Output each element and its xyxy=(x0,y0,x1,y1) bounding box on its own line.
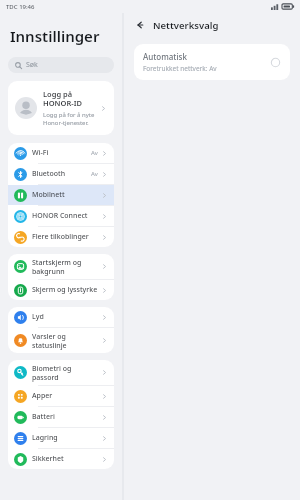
staticText: Apper xyxy=(32,391,101,401)
staticText: Logg på HONOR-ID xyxy=(43,89,82,109)
staticText: Av xyxy=(91,149,98,157)
staticText: HONOR Connect xyxy=(32,211,101,221)
button[interactable]: Lyd xyxy=(8,307,114,327)
button[interactable]: Tilbake xyxy=(132,17,148,33)
button[interactable]: Logg på HONOR-ID xyxy=(8,81,114,135)
staticText: Startskjerm og bakgrunn xyxy=(32,258,101,276)
staticText: Skjerm og lysstyrke xyxy=(32,285,101,295)
staticText: Foretrukket nettverk: Av xyxy=(143,64,217,73)
staticText: Av xyxy=(91,170,98,178)
staticText: Sikkerhet xyxy=(32,454,101,464)
staticText: Varsler og statuslinje xyxy=(32,332,101,350)
staticText: Mobilnett xyxy=(32,190,101,200)
staticText: Lyd xyxy=(32,312,101,322)
button[interactable]: Biometri og passord xyxy=(8,360,114,385)
button[interactable]: Flere tilkoblinger xyxy=(8,227,114,247)
button[interactable]: Startskjerm og bakgrunn xyxy=(8,254,114,279)
staticText: Søk xyxy=(26,60,38,70)
staticText: Lagring xyxy=(32,433,101,443)
button[interactable]: HONOR Connect xyxy=(8,206,114,226)
button[interactable]: Søk xyxy=(8,57,114,73)
button[interactable]: Lagring xyxy=(8,428,114,448)
staticText: Biometri og passord xyxy=(32,364,101,382)
staticText: Bluetooth xyxy=(32,169,91,179)
button[interactable]: Apper xyxy=(8,386,114,406)
staticText: Flere tilkoblinger xyxy=(32,232,101,242)
button[interactable]: Wi-Fi xyxy=(8,143,114,163)
button[interactable]: Varsler og statuslinje xyxy=(8,328,114,353)
staticText: Automatisk xyxy=(143,51,187,62)
button[interactable]: Bluetooth xyxy=(8,164,114,184)
button[interactable]: Sikkerhet xyxy=(8,449,114,469)
button[interactable]: Mobilnett xyxy=(8,185,114,205)
staticText: Wi-Fi xyxy=(32,148,91,158)
staticText: TDC 19:46 xyxy=(6,3,35,11)
button[interactable]: Skjerm og lysstyrke xyxy=(8,280,114,300)
staticText: Logg på for å nyte Honor-tjenester. xyxy=(43,111,95,127)
staticText: Nettverksvalg xyxy=(153,19,219,32)
button[interactable]: Automatisk xyxy=(134,44,290,80)
button[interactable]: Batteri xyxy=(8,407,114,427)
staticText: Innstillinger xyxy=(10,26,100,46)
staticText: Batteri xyxy=(32,412,101,422)
